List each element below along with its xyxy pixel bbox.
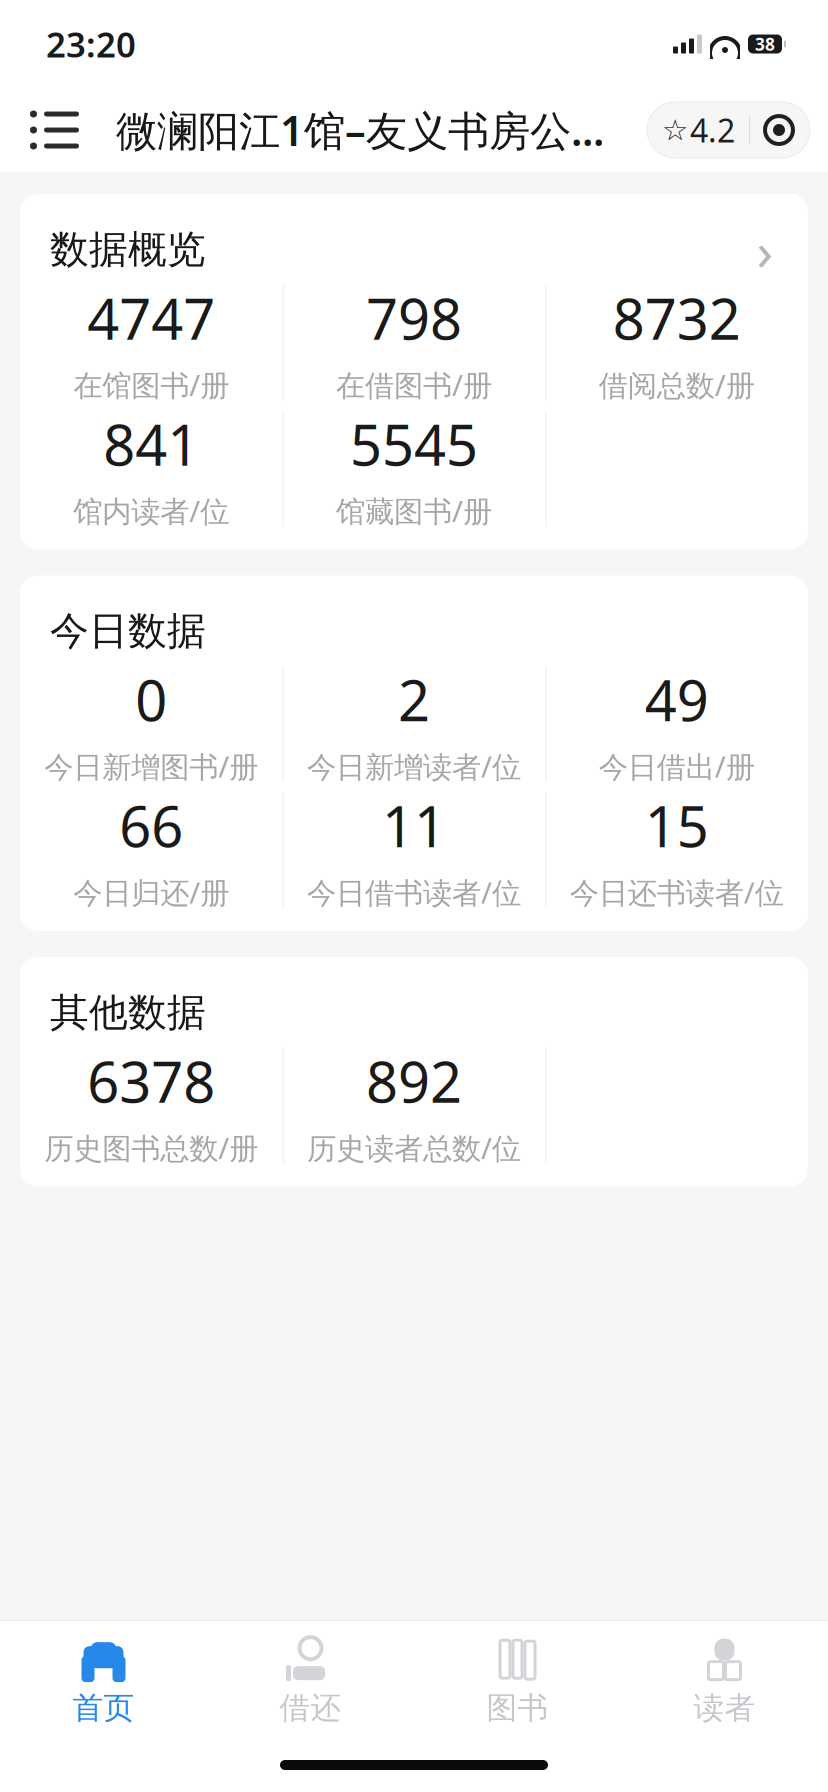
button[interactable]: 首页 [0, 1629, 207, 1733]
staticText: 8732 [613, 281, 741, 355]
staticText: 798 [366, 281, 462, 355]
staticText: 首页 [72, 1689, 134, 1727]
staticText: 数据概览 [50, 226, 206, 273]
staticText: 在馆图书/册 [73, 365, 229, 404]
staticText: 在借图书/册 [336, 365, 492, 404]
staticText: 38 [755, 32, 775, 55]
staticText: 今日借出/册 [599, 747, 755, 786]
button[interactable]: 图书 [414, 1629, 621, 1733]
staticText: 15 [645, 788, 709, 863]
staticText: 馆内读者/位 [73, 491, 229, 530]
staticText: 今日数据 [50, 607, 206, 655]
staticText: 841 [103, 407, 199, 481]
staticText: 微澜阳江1馆–友义书房公... [116, 103, 604, 157]
staticText: 今日新增读者/位 [307, 747, 521, 786]
staticText: 图书 [486, 1689, 548, 1727]
staticText: 借还 [279, 1689, 341, 1727]
staticText: 23:20 [46, 21, 136, 67]
staticText: 今日借书读者/位 [307, 873, 521, 912]
staticText: 66 [119, 788, 183, 863]
staticText: 6378 [87, 1044, 215, 1118]
staticText: 892 [366, 1044, 462, 1118]
button[interactable]: Menu [0, 94, 95, 166]
button[interactable]: Rating 4.2 [647, 102, 749, 158]
staticText: 历史读者总数/位 [307, 1128, 521, 1167]
staticText: 11 [382, 788, 446, 863]
staticText: › [756, 214, 773, 285]
staticText: 今日还书读者/位 [570, 873, 784, 912]
button[interactable]: 读者 [621, 1629, 828, 1733]
staticText: 2 [398, 662, 430, 737]
staticText: 4.2 [690, 109, 735, 151]
staticText: 其他数据 [50, 989, 206, 1036]
button[interactable]: More [750, 102, 810, 158]
staticText: 读者 [693, 1689, 755, 1727]
staticText: 历史图书总数/册 [44, 1128, 258, 1167]
staticText: 今日新增图书/册 [44, 747, 258, 786]
staticText: 5545 [350, 407, 478, 481]
staticText: 4747 [87, 281, 215, 355]
button[interactable]: 数据概览 [20, 194, 808, 279]
staticText: 49 [645, 662, 709, 737]
staticText: 借阅总数/册 [599, 365, 755, 404]
staticText: ☆ [662, 113, 688, 147]
staticText: 馆藏图书/册 [336, 491, 492, 530]
staticText: 今日归还/册 [73, 873, 229, 912]
button[interactable]: 借还 [207, 1629, 414, 1733]
staticText: 0 [135, 662, 167, 737]
